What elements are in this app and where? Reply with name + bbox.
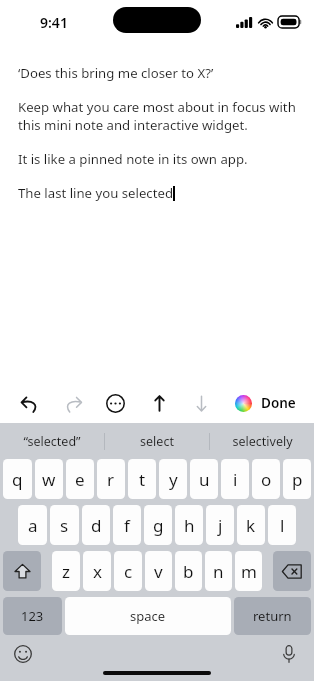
- button[interactable]: k: [237, 505, 265, 545]
- staticText: d: [91, 514, 102, 537]
- staticText: r: [107, 468, 115, 491]
- staticText: return: [253, 607, 292, 625]
- staticText: x: [93, 560, 102, 583]
- button[interactable]: n: [205, 551, 232, 591]
- staticText: It is like a pinned note in its own app.: [18, 150, 248, 168]
- staticText: q: [12, 468, 23, 491]
- staticText: b: [183, 560, 194, 583]
- button[interactable]: i: [221, 459, 249, 499]
- staticText: s: [60, 514, 69, 537]
- staticText: Keep what you care most about in focus w…: [18, 98, 298, 134]
- staticText: c: [124, 560, 133, 583]
- button[interactable]: g: [144, 505, 172, 545]
- button[interactable]: Shift: [3, 551, 41, 591]
- button[interactable]: x: [83, 551, 111, 591]
- button[interactable]: e: [66, 459, 94, 499]
- button[interactable]: z: [52, 551, 80, 591]
- button[interactable]: h: [175, 505, 203, 545]
- staticText: Done: [261, 394, 296, 412]
- staticText: u: [199, 468, 210, 491]
- button[interactable]: Move down: [184, 386, 218, 420]
- button[interactable]: s: [50, 505, 79, 545]
- staticText: w: [42, 468, 56, 491]
- button[interactable]: r: [97, 459, 125, 499]
- button[interactable]: t: [128, 459, 156, 499]
- staticText: v: [154, 560, 163, 583]
- button[interactable]: Emoji: [8, 639, 38, 669]
- button[interactable]: o: [252, 459, 280, 499]
- staticText: o: [261, 468, 272, 491]
- button[interactable]: Done: [255, 390, 302, 416]
- button[interactable]: q: [3, 459, 32, 499]
- staticText: m: [241, 560, 257, 583]
- staticText: e: [75, 468, 85, 491]
- button[interactable]: j: [206, 505, 234, 545]
- button[interactable]: f: [113, 505, 141, 545]
- button[interactable]: p: [283, 459, 311, 499]
- button[interactable]: 123: [3, 597, 62, 635]
- staticText: select: [140, 433, 174, 450]
- staticText: space: [130, 607, 166, 625]
- button[interactable]: Undo: [12, 386, 46, 420]
- button[interactable]: More options: [98, 386, 132, 420]
- staticText: n: [213, 560, 224, 583]
- button[interactable]: m: [235, 551, 262, 591]
- staticText: f: [124, 514, 130, 537]
- staticText: “selected”: [23, 433, 81, 450]
- staticText: g: [153, 514, 164, 537]
- button[interactable]: Dictate: [274, 639, 304, 669]
- staticText: l: [280, 514, 285, 537]
- staticText: selectively: [232, 433, 293, 450]
- staticText: ‘Does this bring me closer to X?’: [18, 64, 214, 82]
- staticText: a: [28, 514, 38, 537]
- button[interactable]: d: [82, 505, 110, 545]
- staticText: p: [292, 468, 303, 491]
- staticText: i: [233, 468, 238, 491]
- button[interactable]: u: [190, 459, 218, 499]
- button[interactable]: Move up: [142, 386, 176, 420]
- button[interactable]: selectively: [210, 423, 314, 459]
- staticText: 9:41: [40, 13, 68, 32]
- staticText: h: [184, 514, 195, 537]
- button[interactable]: return: [234, 597, 311, 635]
- staticText: k: [246, 514, 256, 537]
- button[interactable]: Redo: [56, 386, 90, 420]
- button[interactable]: select: [105, 423, 209, 459]
- button[interactable]: w: [35, 459, 63, 499]
- button[interactable]: c: [114, 551, 142, 591]
- staticText: z: [62, 560, 70, 583]
- staticText: j: [218, 514, 223, 537]
- button[interactable]: space: [65, 597, 231, 635]
- staticText: y: [169, 468, 178, 491]
- button[interactable]: a: [18, 505, 47, 545]
- button[interactable]: b: [175, 551, 202, 591]
- button[interactable]: “selected”: [0, 423, 104, 459]
- staticText: t: [139, 468, 146, 491]
- staticText: 123: [21, 607, 44, 625]
- button[interactable]: l: [268, 505, 296, 545]
- button[interactable]: Backspace: [273, 551, 311, 591]
- button[interactable]: y: [159, 459, 187, 499]
- button[interactable]: v: [145, 551, 172, 591]
- button[interactable]: Colour: [226, 386, 260, 420]
- staticText: The last line you selected: [18, 184, 173, 202]
